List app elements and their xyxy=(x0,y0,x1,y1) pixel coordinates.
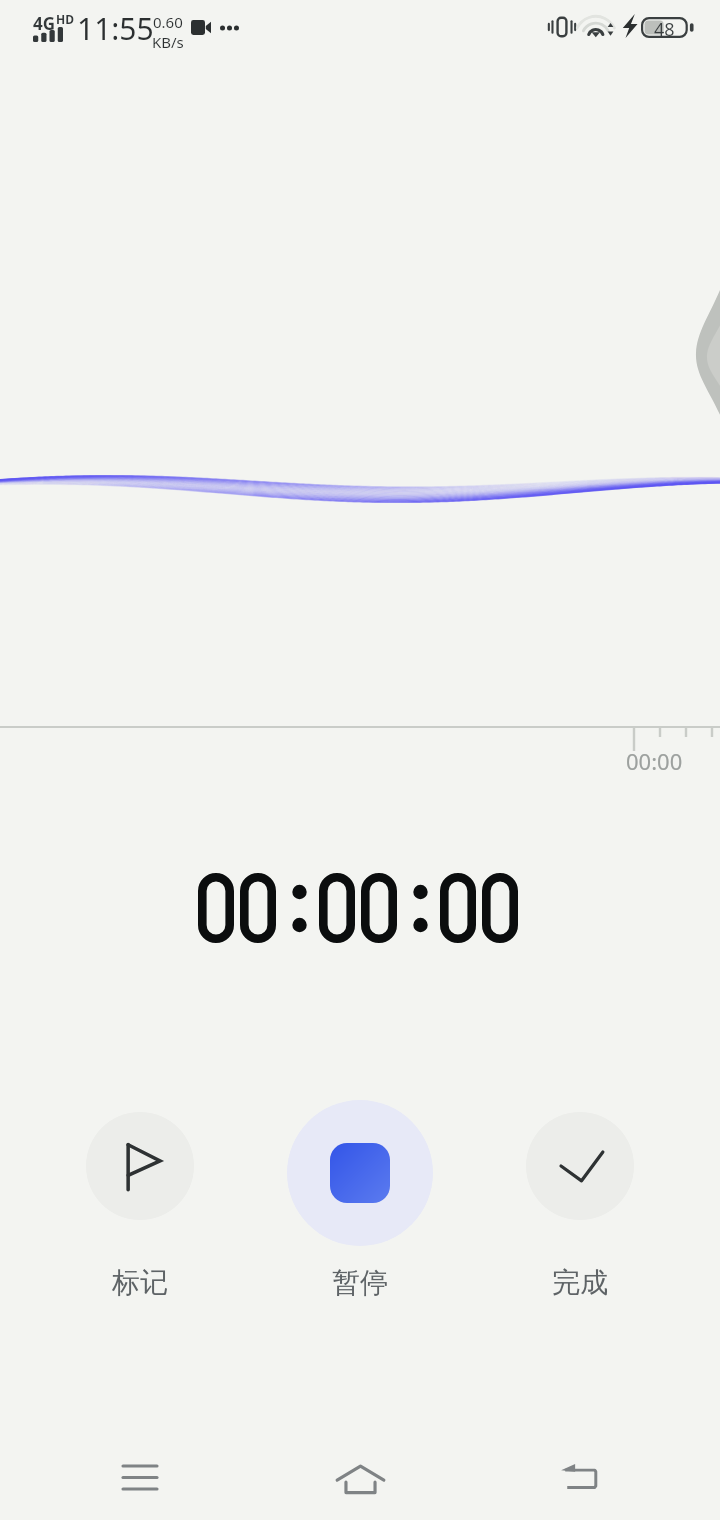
staticText: KB/s xyxy=(152,32,184,50)
button[interactable]: Recents xyxy=(100,1437,180,1517)
staticText: HD xyxy=(56,11,74,27)
button[interactable]: Mark xyxy=(86,1112,194,1220)
button[interactable]: Pause xyxy=(287,1100,433,1246)
button[interactable]: Back xyxy=(540,1437,620,1517)
staticText: 11:55 xyxy=(77,8,154,48)
button[interactable]: Home xyxy=(320,1437,400,1517)
staticText: 48 xyxy=(654,17,675,38)
staticText: 0.60 xyxy=(153,12,183,32)
staticText: 00:00 xyxy=(626,746,683,776)
staticText: 暂停 xyxy=(332,1265,388,1300)
staticText: 4G xyxy=(33,12,56,35)
button[interactable]: Finish xyxy=(526,1112,634,1220)
staticText: 完成 xyxy=(552,1265,608,1300)
staticText: 标记 xyxy=(112,1265,168,1300)
